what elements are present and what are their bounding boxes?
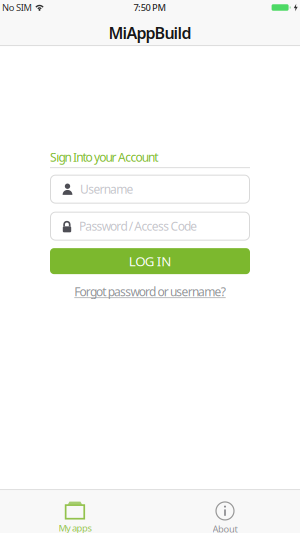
button[interactable]: Password / Access Code (50, 212, 250, 241)
staticText: No SIM (2, 1, 31, 14)
staticText: LOG IN (129, 252, 171, 270)
staticText: Password / Access Code (79, 218, 197, 234)
button[interactable]: My apps (0, 490, 150, 533)
button[interactable]: About (150, 490, 300, 533)
staticText: Sign Into your Account (50, 149, 158, 165)
button[interactable]: LOG IN (50, 248, 250, 274)
staticText: Username (80, 181, 133, 197)
button[interactable]: Forgot password or username? (74, 284, 226, 299)
staticText: Forgot password or username? (74, 284, 226, 299)
staticText: About (212, 523, 237, 533)
staticText: MiAppBuild (108, 22, 191, 43)
button[interactable]: Username (50, 175, 250, 204)
staticText: 7:50 PM (133, 1, 167, 14)
staticText: My apps (58, 522, 91, 533)
